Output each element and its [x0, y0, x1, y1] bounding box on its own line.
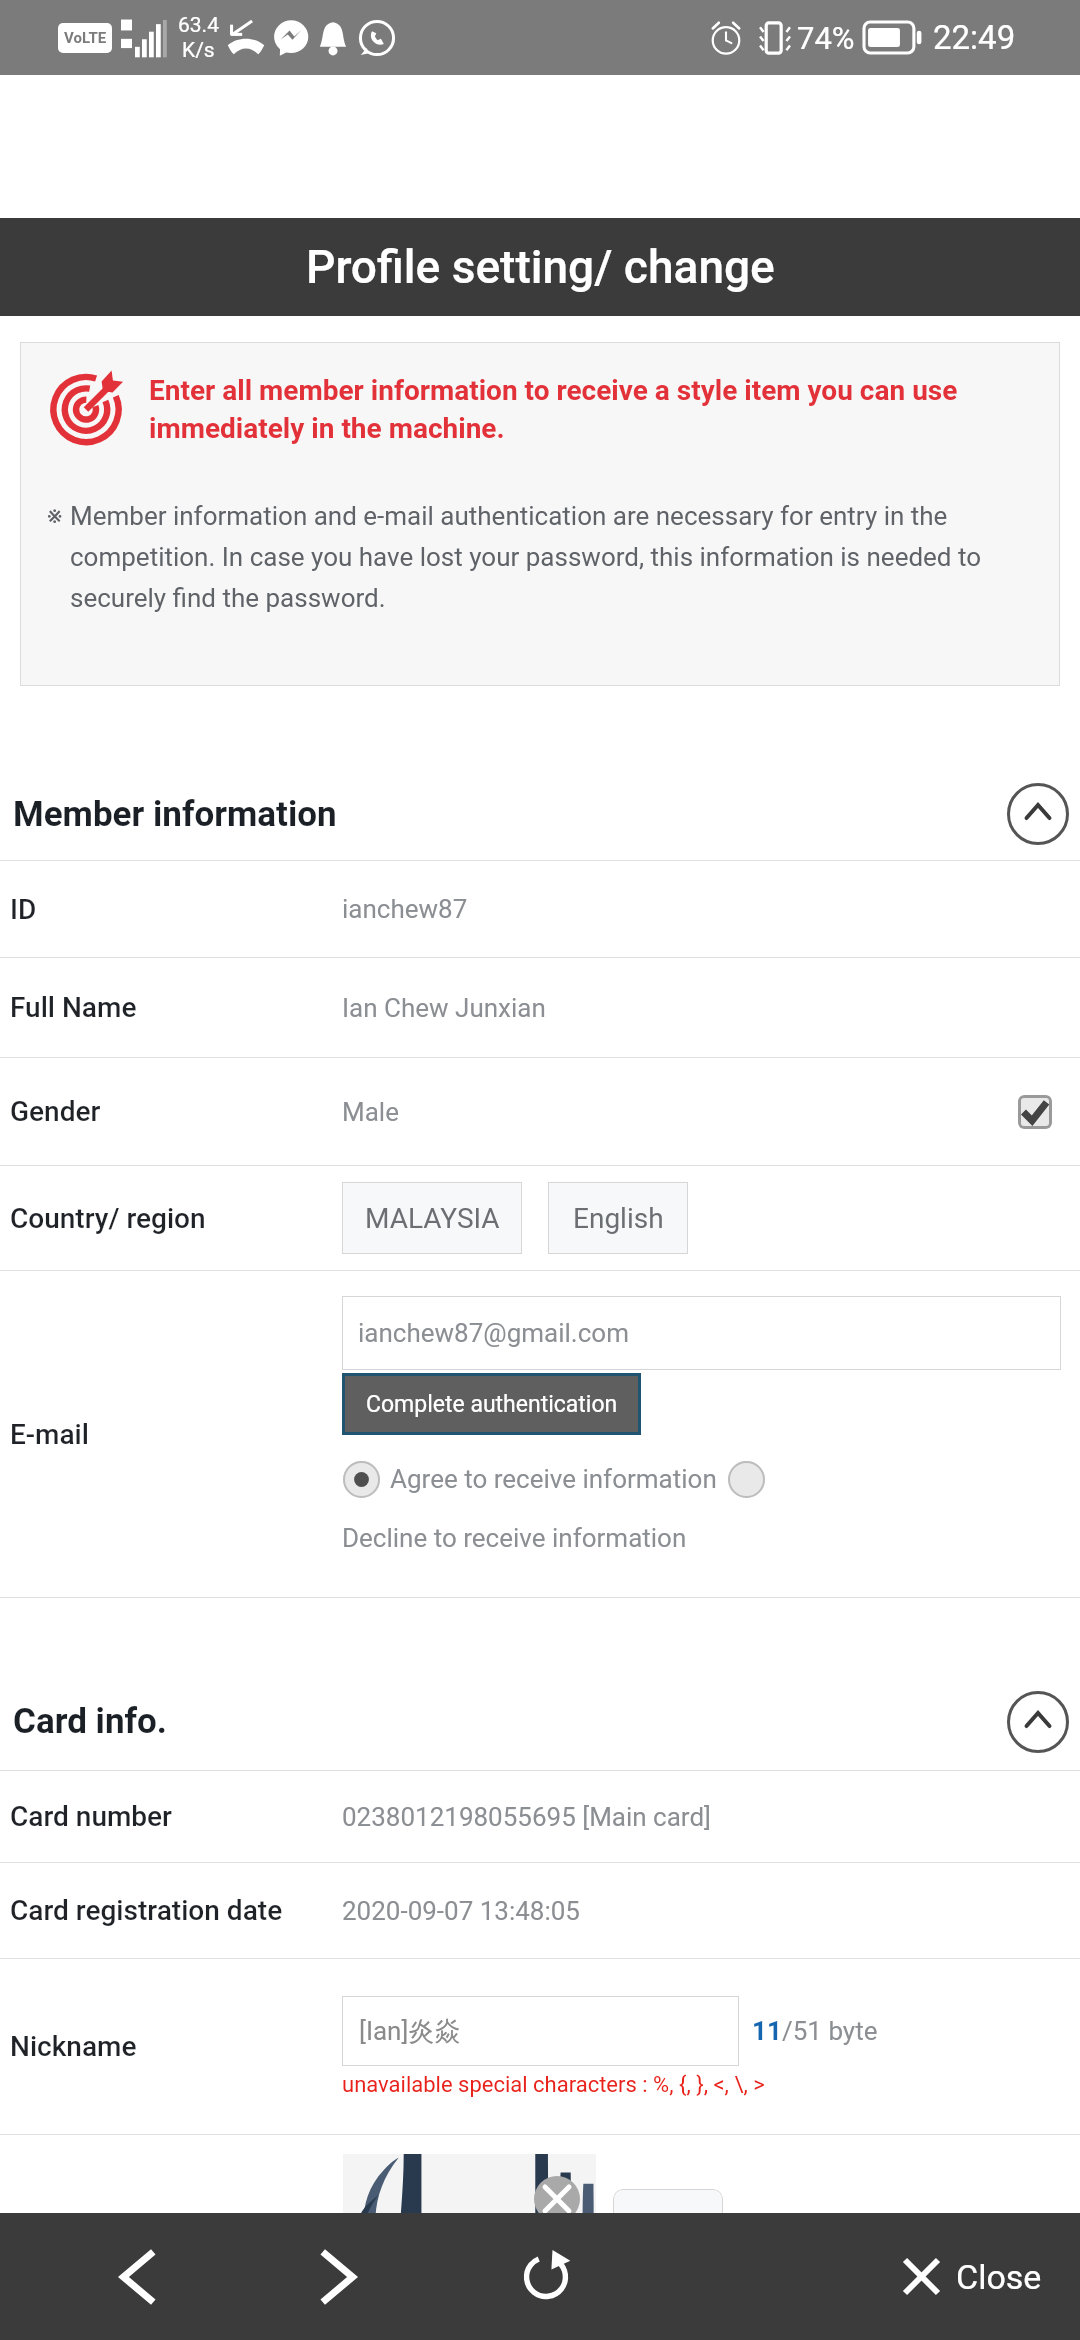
- staticText: ※: [47, 501, 70, 531]
- button[interactable]: Decline option: [727, 1460, 765, 1498]
- button[interactable]: Remove image: [534, 2176, 580, 2222]
- button[interactable]: Card number: [0, 1771, 1080, 1862]
- button[interactable]: Gender: [0, 1058, 1080, 1165]
- staticText: Decline to receive information: [342, 1523, 687, 1553]
- staticText: VoLTE: [64, 29, 107, 47]
- staticText: 22:49: [933, 18, 1016, 57]
- staticText: Nickname: [10, 2030, 342, 2063]
- staticText: Card info.: [13, 1701, 167, 1742]
- button[interactable]: MALAYSIA: [342, 1182, 522, 1254]
- staticText: 74%: [797, 20, 855, 56]
- staticText: 11: [752, 2016, 782, 2046]
- staticText: /51 byte: [782, 2016, 878, 2046]
- staticText: Male: [342, 1097, 1018, 1127]
- staticText: Country/ region: [10, 1202, 342, 1235]
- button[interactable]: Collapse section: [1007, 783, 1069, 845]
- staticText: ID: [10, 893, 342, 926]
- staticText: ianchew87: [342, 894, 468, 924]
- button[interactable]: Close: [905, 2213, 1042, 2340]
- staticText: Complete authentication: [366, 1391, 618, 1418]
- staticText: K/s: [182, 38, 215, 63]
- button[interactable]: Forward: [271, 2213, 407, 2340]
- button[interactable]: Agree option: [342, 1460, 380, 1498]
- button[interactable]: English: [548, 1182, 688, 1254]
- button[interactable]: Full Name: [0, 958, 1080, 1057]
- button[interactable]: Add image: [613, 2189, 723, 2251]
- staticText: Close: [956, 2257, 1042, 2297]
- staticText: MALAYSIA: [365, 1202, 500, 1235]
- staticText: unavailable special characters : %, {, }…: [342, 2072, 765, 2098]
- staticText: Card registration date: [10, 1894, 342, 1927]
- staticText: Gender: [10, 1095, 342, 1128]
- staticText: Member information and e-mail authentica…: [70, 501, 986, 614]
- staticText: English: [573, 1202, 664, 1235]
- staticText: Profile setting/ change: [306, 240, 775, 294]
- staticText: Member information: [13, 794, 337, 835]
- staticText: ianchew87@gmail.com: [358, 1318, 629, 1348]
- button[interactable]: ID: [0, 861, 1080, 957]
- button[interactable]: Card registration date: [0, 1863, 1080, 1958]
- button[interactable]: Reload: [478, 2213, 614, 2340]
- staticText: Full Name: [10, 991, 342, 1024]
- staticText: Agree to receive information: [390, 1464, 717, 1494]
- staticText: Ian Chew Junxian: [342, 993, 546, 1023]
- button[interactable]: Back: [69, 2213, 205, 2340]
- button[interactable]: Gender checkbox: [1018, 1095, 1052, 1129]
- staticText: 63.4: [178, 13, 219, 38]
- staticText: Enter all member information to receive …: [149, 374, 989, 445]
- button[interactable]: Complete authentication: [342, 1373, 641, 1435]
- staticText: 0238012198055695 [Main card]: [342, 1802, 711, 1832]
- staticText: 2020-09-07 13:48:05: [342, 1896, 580, 1926]
- staticText: [Ian]炎焱: [359, 2015, 461, 2048]
- staticText: E-mail: [10, 1418, 89, 1451]
- staticText: Card number: [10, 1800, 342, 1833]
- button[interactable]: Collapse section: [1007, 1691, 1069, 1753]
